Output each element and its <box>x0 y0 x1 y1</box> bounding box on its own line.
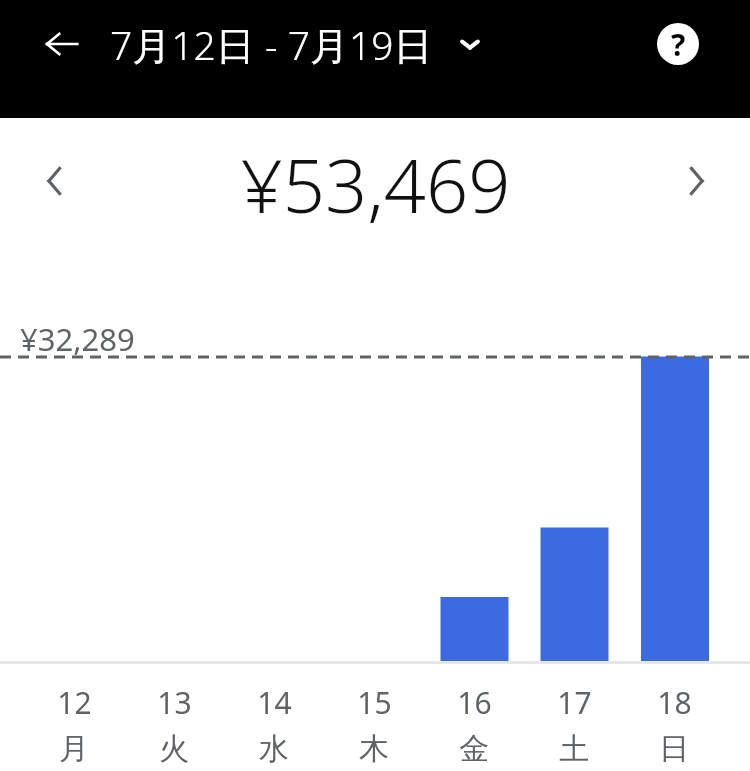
button[interactable]: Help <box>654 20 702 68</box>
button[interactable]: Previous week <box>26 153 82 209</box>
staticText: 木 <box>359 730 389 768</box>
button[interactable]: 16 <box>424 663 524 771</box>
staticText: 16 <box>457 682 492 723</box>
staticText: 金 <box>459 730 489 768</box>
staticText: 15 <box>357 682 392 723</box>
button[interactable]: 12 <box>24 663 124 771</box>
button[interactable]: 14 <box>224 663 324 771</box>
staticText: 7月12日 - 7月19日 <box>110 18 433 71</box>
staticText: 水 <box>259 730 289 768</box>
staticText: 17 <box>557 682 592 723</box>
staticText: 火 <box>159 730 189 768</box>
staticText: 土 <box>559 730 589 768</box>
staticText: 13 <box>157 682 192 723</box>
button[interactable]: 7月12日 - 7月19日 <box>110 10 485 78</box>
staticText: 14 <box>257 682 292 723</box>
button[interactable]: 15 <box>324 663 424 771</box>
staticText: ¥53,469 <box>240 134 511 235</box>
staticText: 12 <box>57 682 92 723</box>
button[interactable]: 13 <box>124 663 224 771</box>
staticText: 18 <box>657 682 692 723</box>
staticText: ? <box>671 24 686 65</box>
staticText: 月 <box>59 730 89 768</box>
button[interactable]: 17 <box>524 663 624 771</box>
button[interactable]: Next week <box>669 153 725 209</box>
button[interactable]: 18 <box>624 663 724 771</box>
button[interactable]: Back <box>38 20 86 68</box>
staticText: ¥32,289 <box>20 318 135 360</box>
staticText: 日 <box>659 730 689 768</box>
